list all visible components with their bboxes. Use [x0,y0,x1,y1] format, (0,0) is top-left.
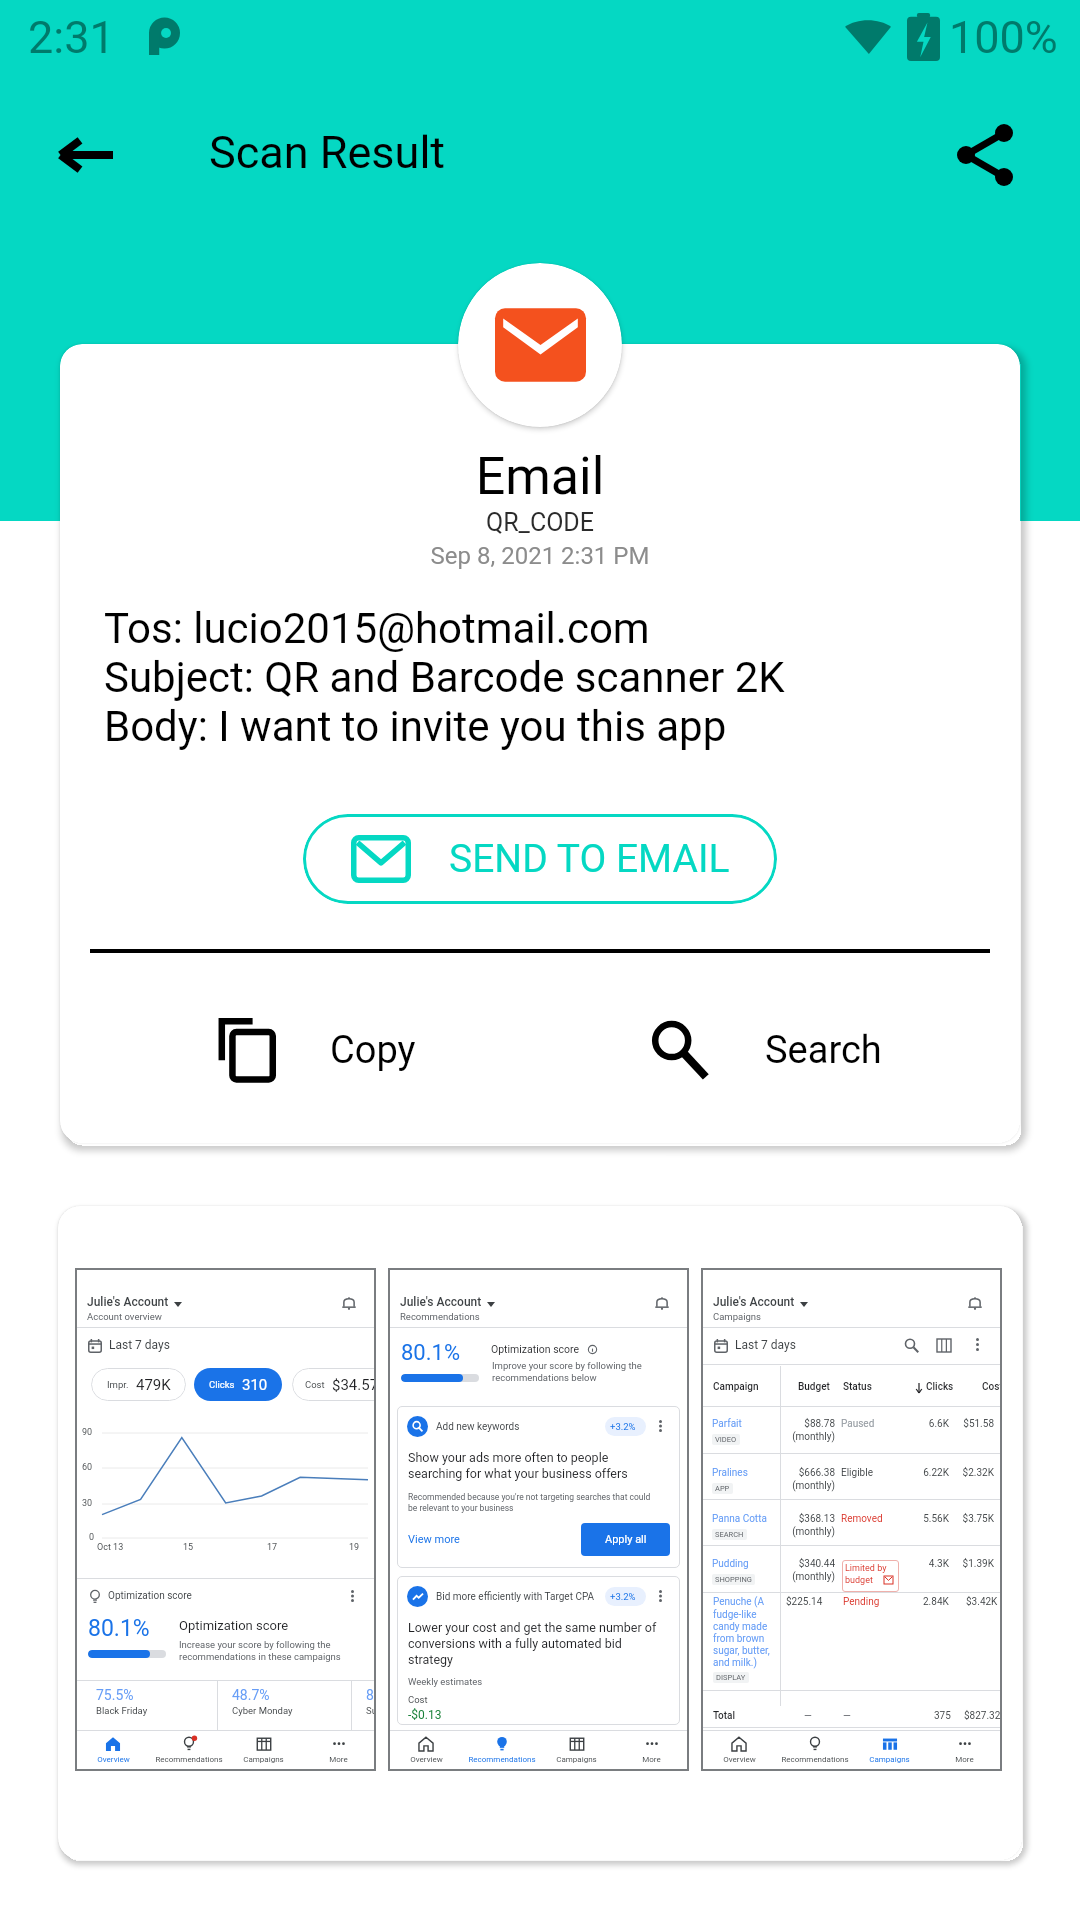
staticText: Bid more efficiently with Target CPA [436,1591,595,1603]
staticText: Overview [410,1755,443,1764]
staticText: Campaigns [556,1755,597,1764]
staticText: Recommendations [400,1311,480,1322]
staticText: More [329,1755,348,1764]
staticText: $88.78 [785,1418,835,1430]
staticText: Last 7 days [735,1338,796,1352]
button[interactable]: More [301,1731,376,1764]
staticText: 0 [89,1532,95,1543]
staticText: 80.1% [401,1340,461,1366]
staticText: Search [765,1028,882,1073]
staticText: Cost [305,1379,325,1390]
staticText: Cost [982,1381,1002,1393]
staticText: APP [715,1484,730,1493]
staticText: SEARCH [715,1530,744,1539]
staticText: 17 [267,1542,278,1553]
staticText: DISPLAY [716,1673,746,1682]
staticText: +3.2% [610,1421,636,1432]
staticText: Julie's Account [87,1295,169,1309]
button[interactable]: Clicks [194,1368,282,1401]
staticText: Last 7 days [109,1338,170,1352]
staticText: (monthly) [785,1571,835,1583]
staticText: Overview [97,1755,130,1764]
staticText: Cyber Monday [232,1705,293,1716]
button[interactable]: Search [620,1000,960,1100]
staticText: 5.56K [905,1513,949,1525]
staticText: More [642,1755,661,1764]
staticText: Status [843,1381,872,1393]
staticText: 15 [183,1542,194,1553]
button[interactable]: Recommendations [464,1731,539,1764]
staticText: QR_CODE [0,508,1080,537]
staticText: Panna Cotta [712,1513,767,1525]
staticText: 48.7% [232,1687,270,1703]
staticText: Optimization score [491,1343,580,1355]
staticText: 30 [82,1498,93,1509]
button[interactable]: Back [37,107,133,203]
button[interactable]: Campaigns [226,1731,301,1764]
button[interactable]: View more [408,1533,460,1546]
staticText: 80 [366,1687,376,1703]
staticText: Account overview [87,1311,162,1322]
staticText: Budget [798,1381,830,1393]
staticText: Total [713,1710,736,1722]
staticText: SHOPPING [715,1575,752,1584]
staticText: Tos: lucio2015@hotmail.com Subject: QR a… [104,604,785,751]
staticText: More [955,1755,974,1764]
staticText: $3.42K [966,1596,998,1608]
button[interactable]: Impr. [91,1368,186,1401]
button[interactable]: SEND TO EMAIL [303,814,777,904]
staticText: Pudding [712,1558,749,1570]
staticText: 6.6K [905,1418,949,1430]
button[interactable]: Overview [701,1731,777,1764]
staticText: $2.32K [951,1467,994,1479]
staticText: 100% [949,11,1058,64]
staticText: $3.75K [951,1513,994,1525]
staticText: Increase your score by following the rec… [179,1639,341,1662]
staticText: Scan Result [209,126,446,179]
staticText: Penuche (A fudge-like candy made from br… [713,1596,770,1668]
staticText: Pralines [712,1467,748,1479]
staticText: Parfait [712,1418,742,1430]
staticText: Overview [723,1755,756,1764]
staticText: Lower your cost and get the same number … [408,1620,657,1667]
button[interactable]: Overview [75,1731,151,1764]
staticText: Optimization score [179,1618,289,1633]
staticText: Copy [330,1028,416,1073]
button[interactable]: Campaigns [852,1731,927,1764]
staticText: Eligible [841,1467,873,1479]
staticText: Sep 8, 2021 2:31 PM [0,542,1080,570]
button[interactable]: Copy [170,1000,500,1100]
button[interactable]: Recommendations [151,1731,226,1764]
staticText: 75.5% [96,1687,134,1703]
staticText: — [804,1710,812,1722]
button[interactable]: Campaigns [539,1731,614,1764]
staticText: -$0.13 [408,1708,442,1722]
staticText: — [843,1710,851,1722]
staticText: Optimization score [108,1590,192,1602]
staticText: Campaigns [243,1755,284,1764]
staticText: Email [0,446,1080,507]
staticText: 2.84K [923,1596,949,1608]
staticText: Recommended because you're not targeting… [408,1492,651,1513]
button[interactable]: Cost [292,1368,376,1401]
staticText: 4.3K [905,1558,949,1570]
staticText: 80.1% [88,1615,150,1642]
staticText: $34.57 [332,1376,376,1394]
staticText: Black Friday [96,1705,148,1716]
button[interactable]: Apply all [581,1523,670,1556]
staticText: $666.38 [785,1467,835,1479]
staticText: 90 [82,1427,93,1438]
staticText: Show your ads more often to people searc… [408,1450,628,1481]
button[interactable]: Share [937,107,1033,203]
staticText: (monthly) [785,1431,835,1443]
staticText: Impr. [107,1379,129,1390]
staticText: $51.58 [951,1418,994,1430]
button[interactable]: More [927,1731,1002,1764]
button[interactable]: Recommendations [777,1731,852,1764]
staticText: $368.13 [785,1513,835,1525]
staticText: (monthly) [785,1480,835,1492]
button[interactable]: Overview [388,1731,464,1764]
staticText: Cost [408,1694,428,1705]
button[interactable]: More [614,1731,689,1764]
staticText: $225.14 [786,1596,823,1608]
